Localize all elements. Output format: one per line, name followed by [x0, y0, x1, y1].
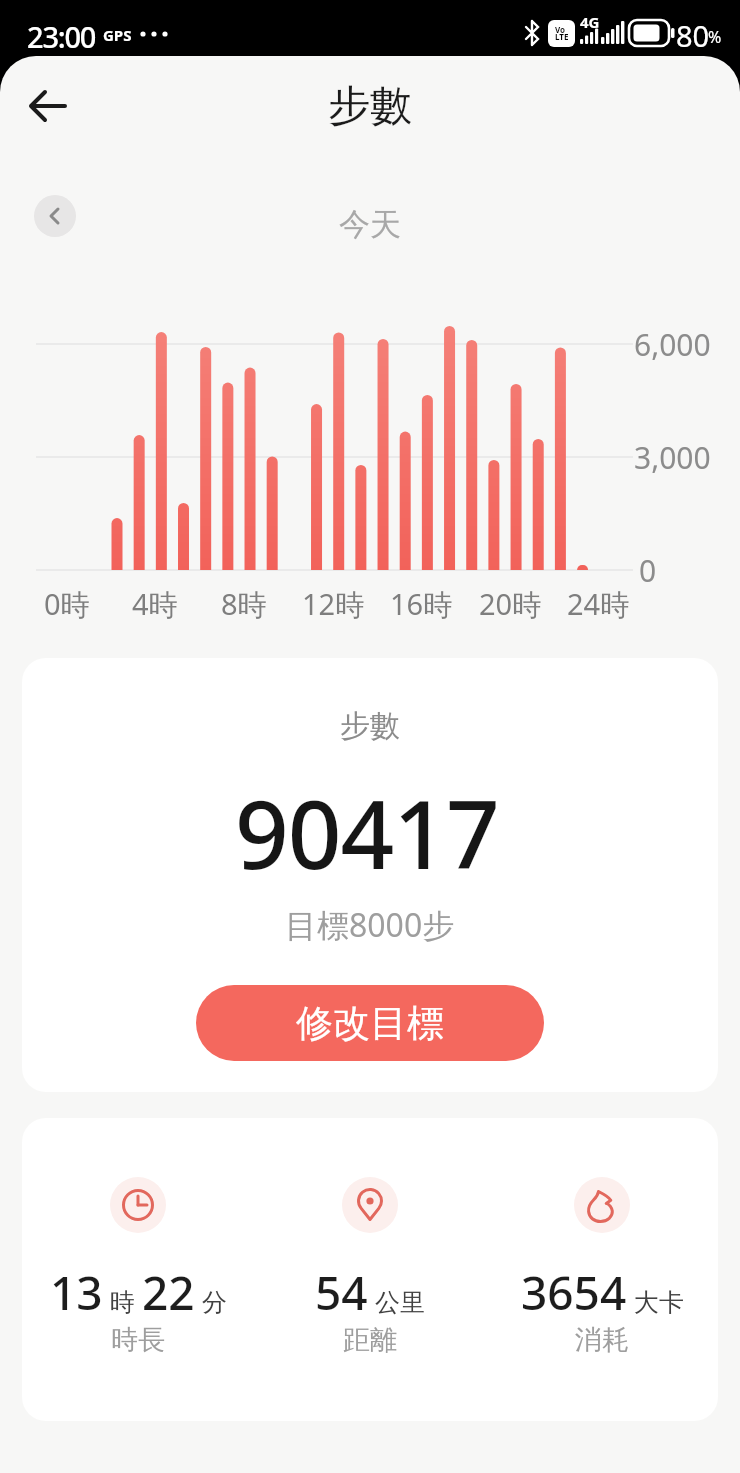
staticText: GPS [103, 25, 132, 45]
staticText: 大卡 [634, 1287, 684, 1318]
staticText: 22 [142, 1261, 195, 1324]
staticText: 步數 [328, 80, 412, 133]
button[interactable] [20, 78, 76, 134]
staticText: 步數 [340, 707, 400, 745]
staticText: Vo LTE [555, 24, 569, 43]
staticText: 今天 [339, 205, 401, 244]
staticText: % [708, 26, 722, 48]
staticText: 80 [676, 16, 710, 55]
staticText: 23:00 [27, 17, 96, 56]
staticText: 4時 [132, 584, 178, 624]
staticText: 時 [110, 1287, 135, 1318]
staticText: 12時 [302, 584, 365, 624]
staticText: 3654 [521, 1261, 627, 1324]
button[interactable]: 修改目標 [196, 985, 544, 1061]
staticText: 54 [315, 1261, 368, 1324]
staticText: 24時 [567, 584, 630, 624]
staticText: 90417 [235, 769, 499, 897]
staticText: 分 [202, 1287, 227, 1318]
staticText: 3,000 [634, 437, 711, 478]
staticText: 16時 [390, 584, 453, 624]
staticText: 0時 [44, 584, 90, 624]
staticText: 6,000 [634, 324, 711, 365]
staticText: 20時 [479, 584, 542, 624]
staticText: 消耗 [575, 1323, 629, 1357]
staticText: 修改目標 [296, 1000, 444, 1047]
staticText: 距離 [343, 1323, 397, 1357]
staticText: 目標8000步 [285, 903, 455, 947]
staticText: 0 [639, 550, 657, 591]
staticText: 4G [580, 12, 600, 32]
button[interactable] [34, 195, 76, 237]
staticText: 13 [50, 1261, 103, 1324]
staticText: 時長 [111, 1323, 165, 1357]
staticText: 公里 [375, 1287, 425, 1318]
staticText: 8時 [221, 584, 267, 624]
